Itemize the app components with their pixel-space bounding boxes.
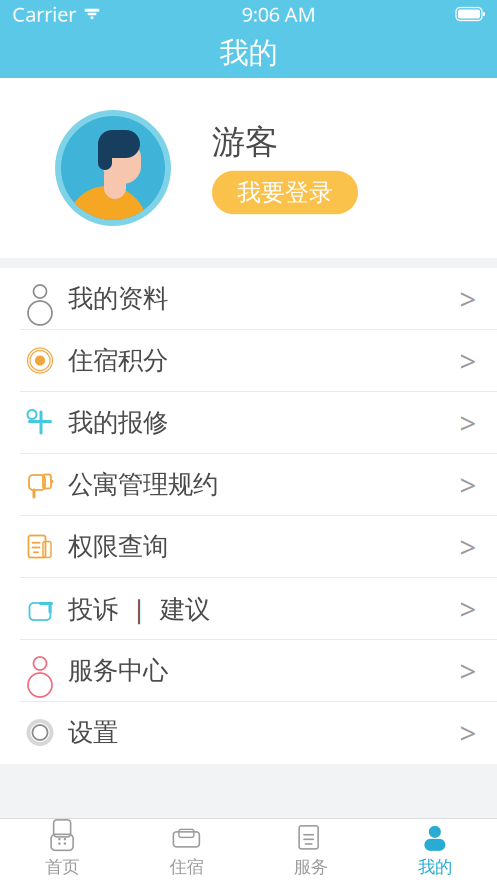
button[interactable]: 服务中心 bbox=[0, 640, 497, 702]
button[interactable]: 我的 bbox=[373, 819, 497, 883]
button[interactable]: 首页 bbox=[0, 819, 124, 883]
staticText: 住宿 bbox=[169, 856, 203, 878]
staticText: > bbox=[459, 589, 476, 628]
button[interactable]: 我的报修 bbox=[0, 392, 497, 454]
button[interactable]: 公寓管理规约 bbox=[0, 454, 497, 516]
staticText: Carrier bbox=[12, 1, 76, 27]
staticText: > bbox=[459, 527, 476, 566]
button[interactable]: 权限查询 bbox=[0, 516, 497, 578]
staticText: 我要登录 bbox=[237, 178, 333, 207]
button[interactable]: 我要登录 bbox=[212, 171, 358, 214]
staticText: 公寓管理规约 bbox=[68, 469, 218, 500]
staticText: > bbox=[459, 651, 476, 690]
staticText: 首页 bbox=[45, 856, 79, 878]
button[interactable]: 住宿 bbox=[124, 819, 248, 883]
staticText: 投诉 | 建议 bbox=[68, 592, 210, 625]
button[interactable]: 我的资料 bbox=[0, 268, 497, 330]
button[interactable]: 投诉 | 建议 bbox=[0, 578, 497, 640]
staticText: 权限查询 bbox=[68, 531, 168, 562]
staticText: > bbox=[459, 279, 476, 318]
staticText: 住宿积分 bbox=[68, 345, 168, 376]
staticText: 游客 bbox=[212, 122, 278, 163]
staticText: 我的 bbox=[219, 35, 277, 71]
staticText: > bbox=[459, 403, 476, 442]
staticText: 服务中心 bbox=[68, 655, 168, 686]
button[interactable]: 服务 bbox=[248, 819, 373, 883]
button[interactable]: 设置 bbox=[0, 702, 497, 764]
staticText: 服务 bbox=[294, 856, 328, 878]
button[interactable]: 住宿积分 bbox=[0, 330, 497, 392]
staticText: > bbox=[459, 341, 476, 380]
staticText: 我的报修 bbox=[68, 407, 168, 438]
staticText: > bbox=[459, 713, 476, 752]
staticText: 我的 bbox=[418, 856, 452, 878]
staticText: 9:06 AM bbox=[241, 1, 315, 27]
staticText: 我的资料 bbox=[68, 283, 168, 314]
staticText: > bbox=[459, 465, 476, 504]
staticText: 设置 bbox=[68, 717, 118, 748]
